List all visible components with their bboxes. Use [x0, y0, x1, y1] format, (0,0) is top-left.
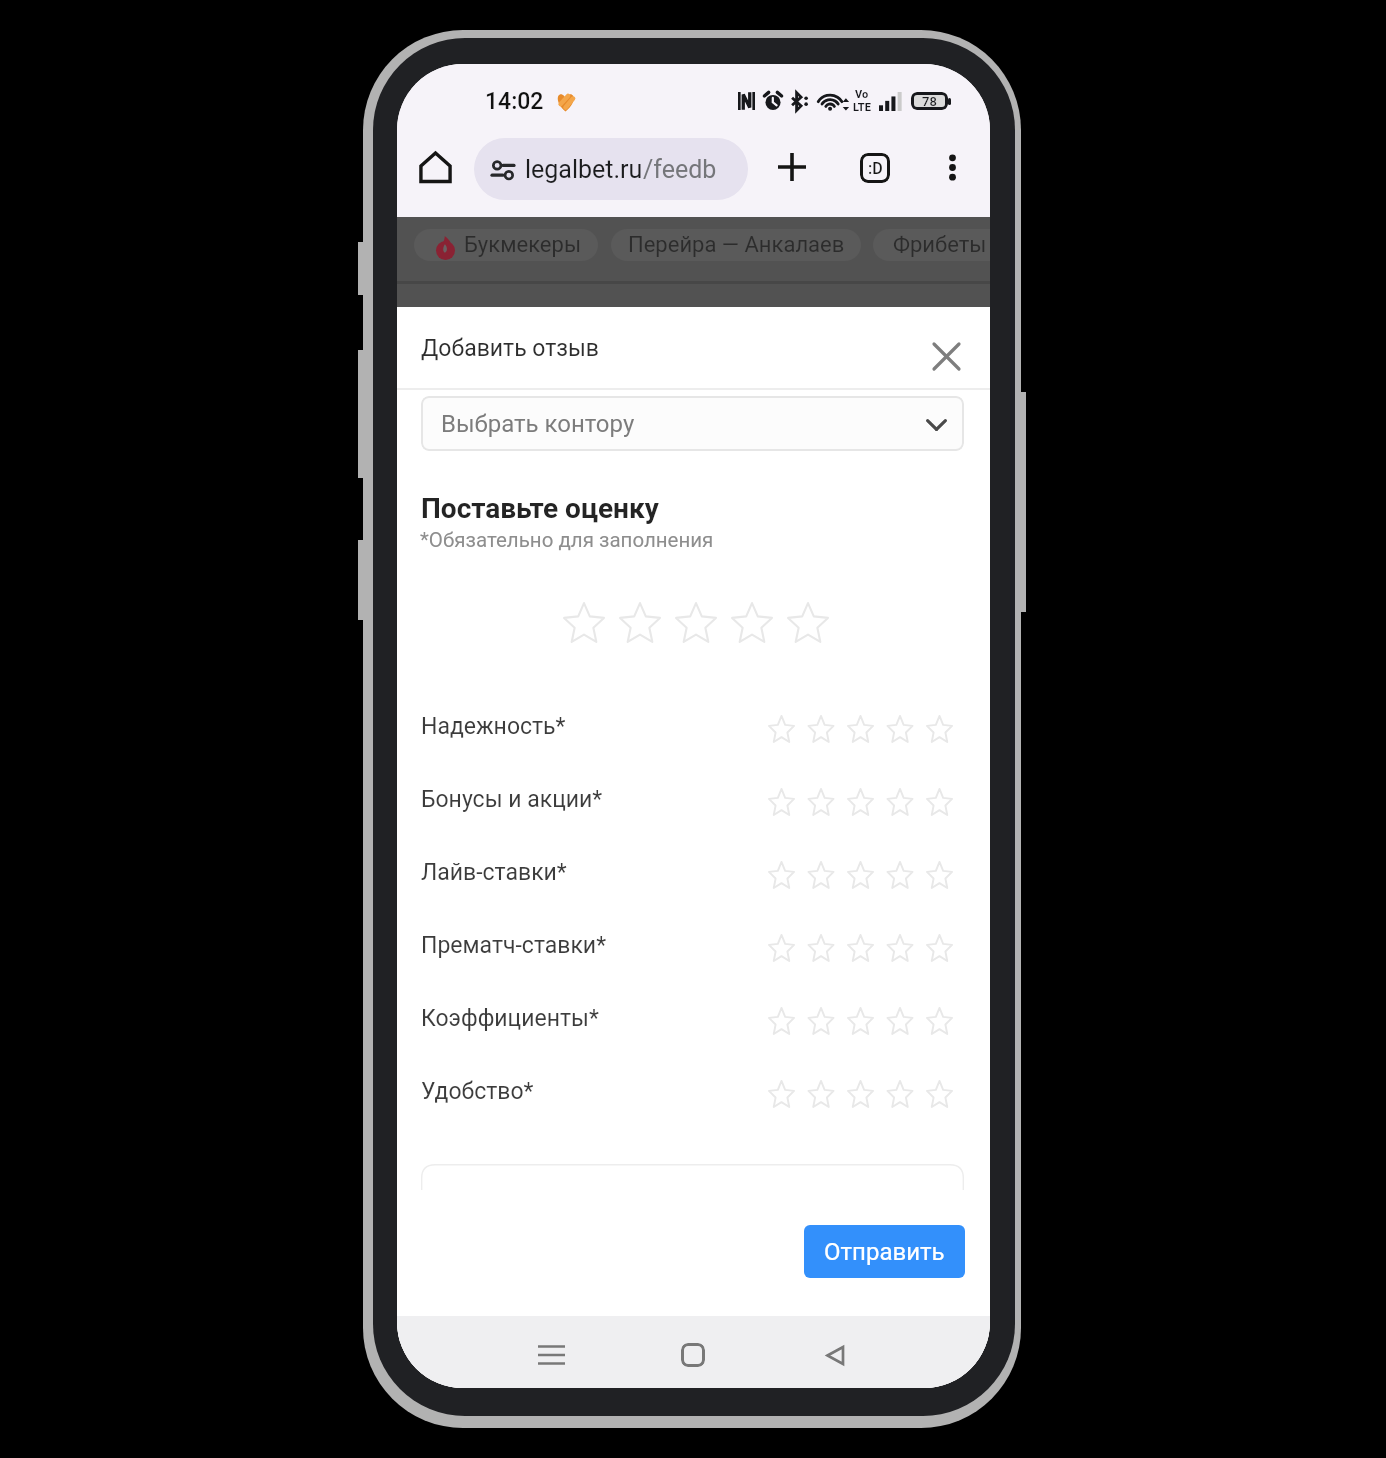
- staticText: Vo: [855, 88, 869, 101]
- button[interactable]: Надежность*: [397, 699, 990, 753]
- button[interactable]: Общая оценка: [557, 593, 835, 651]
- button[interactable]: Tabs: [848, 142, 902, 196]
- staticText: LTE: [853, 101, 871, 114]
- button[interactable]: Бонусы и акции*: [397, 772, 990, 826]
- staticText: Выбрать контору: [441, 410, 635, 438]
- staticText: Добавить отзыв: [421, 335, 599, 362]
- staticText: Букмекеры: [464, 232, 581, 258]
- staticText: Поставьте оценку: [421, 492, 659, 525]
- staticText: Надежность*: [421, 713, 566, 740]
- staticText: :D: [868, 159, 883, 178]
- button[interactable]: Коэффициенты*: [397, 991, 990, 1045]
- button[interactable]: Фрибеты: [873, 229, 990, 261]
- button[interactable]: Букмекеры: [414, 229, 598, 261]
- button[interactable]: Back: [804, 1324, 866, 1386]
- staticText: Удобство*: [421, 1078, 534, 1105]
- staticText: Бонусы и акции*: [421, 786, 603, 813]
- button[interactable]: More options: [925, 142, 979, 196]
- button[interactable]: legalbet.ru: [474, 138, 748, 200]
- staticText: 14:02: [485, 88, 544, 115]
- staticText: Отправить: [824, 1238, 945, 1266]
- staticText: 78: [922, 94, 937, 109]
- button[interactable]: Лайв-ставки*: [397, 845, 990, 899]
- button[interactable]: Close: [920, 330, 972, 382]
- staticText: /feedb: [643, 155, 717, 184]
- staticText: Перейра — Анкалаев: [628, 232, 845, 258]
- button[interactable]: Отправить: [804, 1225, 965, 1278]
- staticText: Лайв-ставки*: [421, 859, 567, 886]
- button[interactable]: Выбрать контору: [421, 396, 964, 451]
- button[interactable]: Recent apps: [520, 1324, 582, 1386]
- button[interactable]: Текст отзыва: [421, 1164, 964, 1190]
- button[interactable]: Home: [408, 142, 462, 196]
- staticText: *Обязательно для заполнения: [420, 528, 714, 552]
- staticText: legalbet.ru: [525, 155, 643, 184]
- button[interactable]: Перейра — Анкалаев: [611, 229, 861, 261]
- staticText: Коэффициенты*: [421, 1005, 599, 1032]
- button[interactable]: Прематч-ставки*: [397, 918, 990, 972]
- button[interactable]: Удобство*: [397, 1064, 990, 1118]
- button[interactable]: Home: [662, 1324, 724, 1386]
- button[interactable]: New tab: [765, 142, 819, 196]
- staticText: Фрибеты: [893, 232, 987, 258]
- staticText: Прематч-ставки*: [421, 932, 607, 959]
